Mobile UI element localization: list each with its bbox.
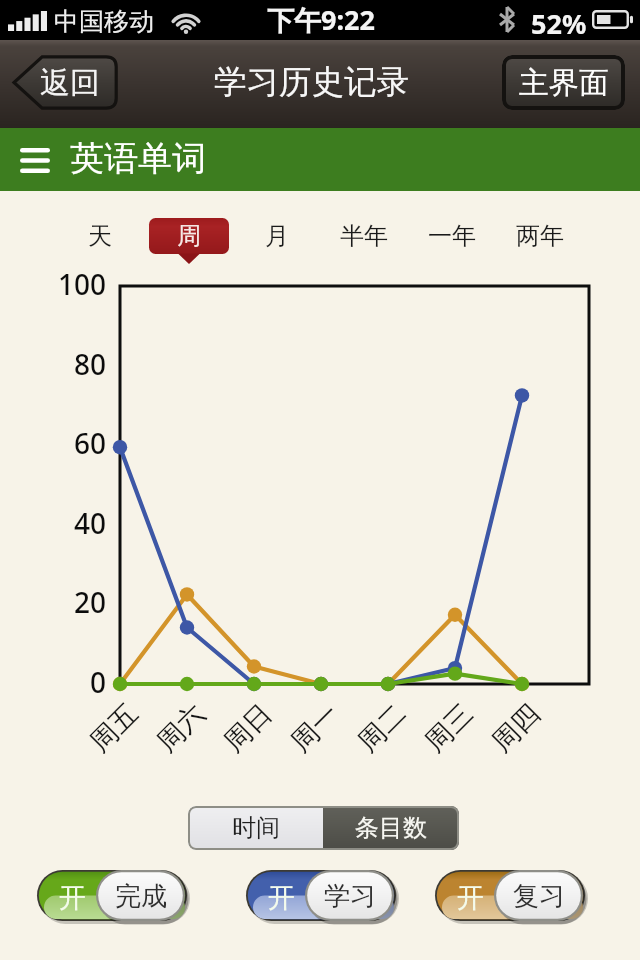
button[interactable]: 条目数 [323,806,459,850]
staticText: 时间 [232,813,280,843]
button[interactable]: 周 [149,218,229,266]
staticText: 半年 [340,221,388,251]
staticText: 返回 [40,64,100,102]
staticText: 周 [177,221,201,251]
staticText: 周日 [217,697,279,759]
staticText: 开 [268,881,295,911]
staticText: 中国移动 [54,6,154,37]
staticText: 主界面 [519,64,609,102]
button[interactable]: 一年 [412,218,492,254]
staticText: 周一 [284,697,346,759]
staticText: 复习 [513,880,565,913]
staticText: 两年 [516,221,564,251]
button[interactable]: 返回 [11,55,118,110]
staticText: 100 [58,265,107,303]
staticText: 40 [74,504,107,542]
staticText: 天 [88,221,112,251]
button[interactable]: 开 [37,870,190,924]
button[interactable]: 开 [435,870,588,924]
staticText: 月 [265,221,289,251]
button[interactable]: 天 [60,218,140,254]
staticText: 20 [74,583,107,621]
staticText: 开 [457,881,484,911]
staticText: 周六 [150,697,212,759]
staticText: 0 [90,663,107,701]
staticText: 52% [531,5,587,42]
staticText: 周五 [83,697,145,759]
staticText: 开 [59,881,86,911]
button[interactable]: 开 [246,870,399,924]
staticText: 学习历史记录 [214,62,409,103]
staticText: 英语单词 [70,137,206,180]
staticText: 周三 [418,697,480,759]
button[interactable]: Menu [12,135,58,185]
staticText: 完成 [115,880,167,913]
staticText: 周二 [351,697,413,759]
staticText: 80 [74,345,107,383]
button[interactable]: 月 [237,218,317,254]
button[interactable]: 两年 [500,218,580,254]
staticText: 一年 [428,221,476,251]
staticText: 周四 [485,697,547,759]
button[interactable]: 半年 [324,218,404,254]
staticText: 学习 [324,880,376,913]
button[interactable]: 时间 [188,806,323,850]
staticText: 条目数 [355,813,427,843]
staticText: 下午9:22 [267,1,375,38]
button[interactable]: 主界面 [502,55,625,110]
staticText: 60 [74,424,107,462]
